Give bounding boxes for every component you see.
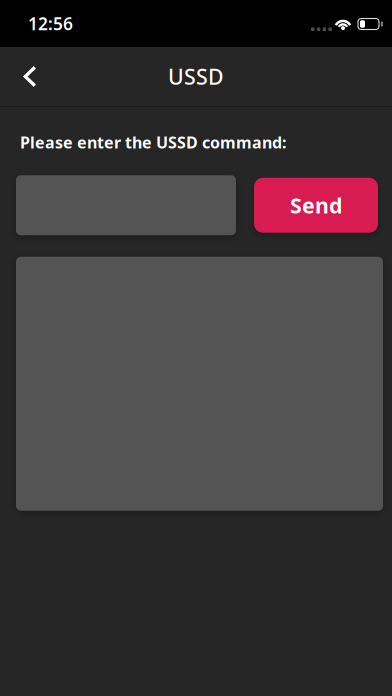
staticText: USSD xyxy=(168,62,224,91)
staticText: 12:56 xyxy=(28,12,73,35)
staticText: Please enter the USSD command: xyxy=(20,132,286,153)
button[interactable]: Back xyxy=(5,50,55,102)
staticText: Send xyxy=(290,191,342,219)
button[interactable]: Send xyxy=(254,178,378,233)
